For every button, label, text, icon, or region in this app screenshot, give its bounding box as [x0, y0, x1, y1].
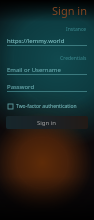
staticText: Instance [66, 26, 87, 33]
staticText: Password [7, 83, 35, 91]
button[interactable]: Email or Username [7, 65, 87, 75]
staticText: Sign in [52, 3, 87, 18]
button[interactable]: https://lemmy.world [7, 36, 87, 46]
staticText: Two-factor authentication [16, 103, 77, 110]
button[interactable]: Sign in [6, 116, 88, 129]
staticText: https://lemmy.world [7, 37, 65, 45]
staticText: Credentials [60, 55, 87, 62]
staticText: Email or Username [7, 66, 61, 74]
button[interactable]: Password [7, 82, 87, 92]
button[interactable]: Two-factor authentication [8, 100, 86, 112]
staticText: Sign in [37, 119, 57, 127]
